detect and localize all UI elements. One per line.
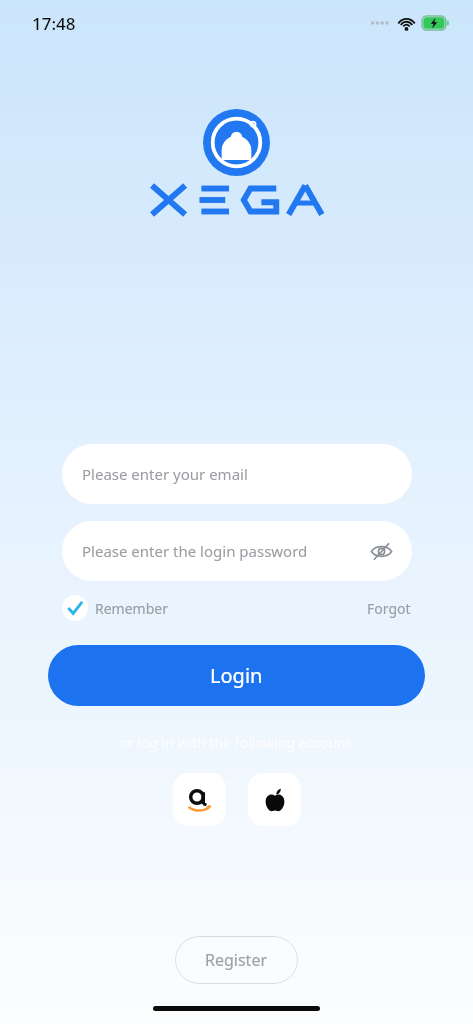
staticText: Forgot: [367, 599, 411, 618]
button[interactable]: Sign in with Amazon: [173, 773, 226, 826]
button[interactable]: Forgot: [367, 599, 411, 618]
button[interactable]: Please enter the login password: [62, 521, 412, 581]
staticText: or log in with the following account.: [119, 733, 355, 752]
button[interactable]: Please enter your email: [62, 444, 412, 504]
button[interactable]: Sign in with Apple: [248, 773, 301, 826]
staticText: Login: [210, 662, 263, 689]
button[interactable]: Register: [175, 936, 298, 984]
button[interactable]: Login: [48, 645, 425, 706]
staticText: Please enter your email: [82, 464, 248, 484]
staticText: 17:48: [32, 12, 76, 35]
button[interactable]: Remember: [62, 595, 168, 621]
staticText: Please enter the login password: [82, 541, 308, 561]
button[interactable]: Show password: [362, 532, 400, 570]
staticText: Register: [205, 949, 268, 971]
staticText: Remember: [95, 599, 168, 618]
